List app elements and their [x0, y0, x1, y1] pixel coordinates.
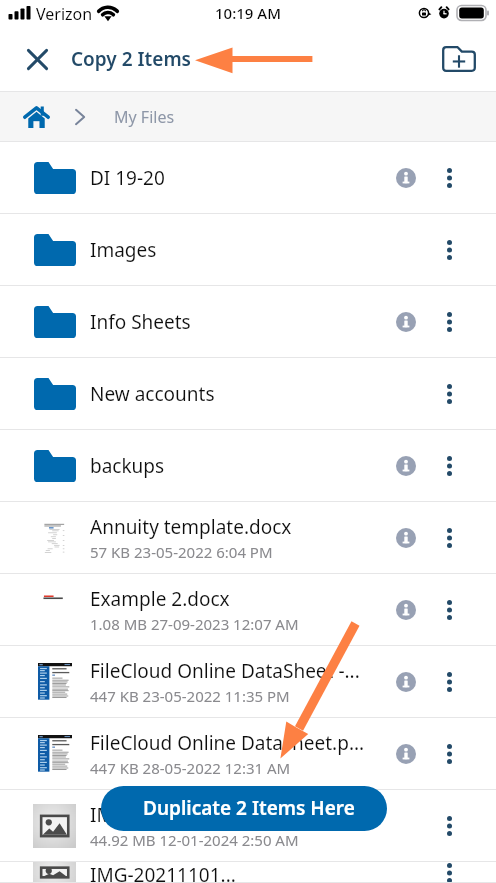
staticText: 447 KB 23-05-2022 11:35 PM — [90, 686, 290, 706]
staticText: 1.08 MB 27-09-2023 12:07 AM — [90, 614, 299, 634]
button[interactable]: Images — [0, 214, 496, 286]
staticText: 57 KB 23-05-2022 6:04 PM — [90, 542, 273, 562]
button[interactable]: FileCloud Online DataSheet -... — [0, 646, 496, 718]
staticText: Images — [90, 237, 157, 263]
button[interactable]: Info — [384, 296, 428, 348]
button[interactable]: Info — [384, 728, 428, 780]
button[interactable]: IMG-20211101... — [0, 862, 496, 883]
staticText: FileCloud Online DataSheet -... — [90, 658, 360, 684]
staticText: Copy 2 Items — [71, 46, 191, 72]
button[interactable]: More options — [428, 224, 471, 276]
button[interactable]: More options — [428, 800, 471, 852]
staticText: IMG... — [90, 802, 143, 828]
button[interactable]: Home — [13, 97, 59, 137]
button[interactable]: Annuity template.docx — [0, 502, 496, 574]
button[interactable]: Info — [384, 862, 428, 883]
staticText: Annuity template.docx — [90, 514, 292, 540]
button[interactable]: Info — [384, 152, 428, 204]
button[interactable]: More options — [428, 152, 471, 204]
button[interactable]: More options — [428, 728, 471, 780]
button[interactable]: Duplicate 2 Items Here — [101, 786, 387, 831]
button[interactable]: New folder — [436, 40, 482, 78]
button[interactable]: More options — [428, 862, 471, 883]
button[interactable]: Info Sheets — [0, 286, 496, 358]
button[interactable]: More options — [428, 440, 471, 492]
staticText: New accounts — [90, 381, 215, 407]
button[interactable]: More options — [428, 368, 471, 420]
staticText: Duplicate 2 Items Here — [143, 795, 355, 821]
staticText: My Files — [114, 106, 175, 128]
staticText: Info Sheets — [90, 309, 191, 335]
button[interactable]: More options — [428, 512, 471, 564]
staticText: Example 2.docx — [90, 586, 230, 612]
staticText: IMG-20211101... — [90, 862, 236, 883]
staticText: Verizon — [36, 3, 93, 25]
button[interactable]: Info — [384, 656, 428, 708]
staticText: 44.92 MB 12-01-2024 2:50 AM — [90, 830, 299, 850]
button[interactable]: Info — [384, 584, 428, 636]
button[interactable]: New accounts — [0, 358, 496, 430]
staticText: FileCloud Online Datasheet.p... — [90, 730, 365, 756]
button[interactable]: Info — [384, 440, 428, 492]
button[interactable]: Example 2.docx — [0, 574, 496, 646]
button[interactable]: More options — [428, 584, 471, 636]
button[interactable]: backups — [0, 430, 496, 502]
button[interactable]: Info — [384, 800, 428, 852]
button[interactable]: FileCloud Online Datasheet.p... — [0, 718, 496, 790]
button[interactable]: Close — [15, 37, 59, 81]
button[interactable]: DI 19-20 — [0, 142, 496, 214]
button[interactable]: Info — [384, 512, 428, 564]
staticText: DI 19-20 — [90, 165, 165, 191]
button[interactable]: More options — [428, 656, 471, 708]
button[interactable]: More options — [428, 296, 471, 348]
staticText: 447 KB 28-05-2022 12:31 AM — [90, 758, 291, 778]
staticText: 10:19 AM — [215, 3, 281, 23]
staticText: backups — [90, 453, 165, 479]
button[interactable]: IMG... — [0, 790, 496, 862]
